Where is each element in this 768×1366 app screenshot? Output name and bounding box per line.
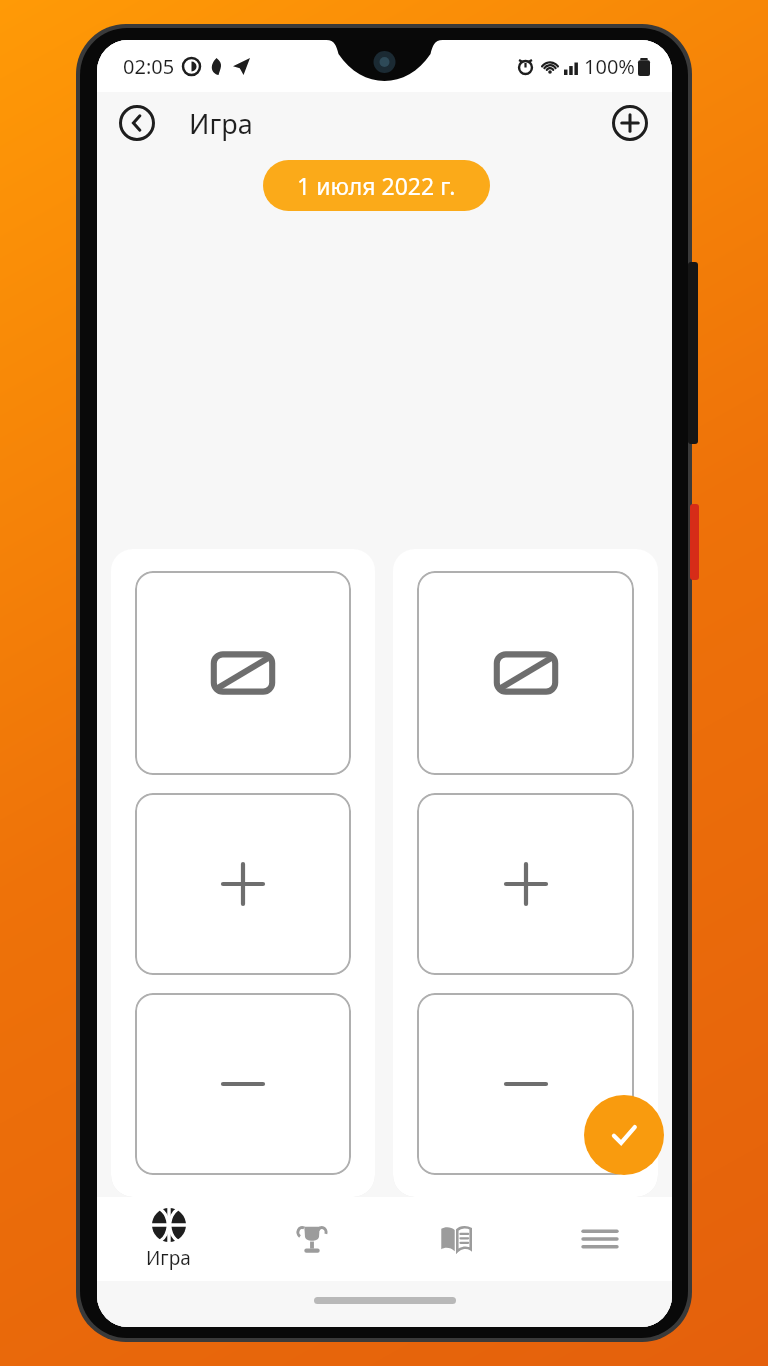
- button[interactable]: Добавить: [606, 99, 654, 147]
- staticText: 02:05: [123, 53, 175, 80]
- button[interactable]: Убавить: [135, 993, 351, 1175]
- button[interactable]: Меню: [528, 1197, 672, 1281]
- button[interactable]: Правила: [384, 1197, 528, 1281]
- button[interactable]: 1 июля 2022 г.: [263, 160, 490, 211]
- button[interactable]: Фото игрока: [417, 571, 634, 775]
- staticText: 100%: [584, 53, 635, 80]
- button[interactable]: Назад: [113, 99, 161, 147]
- staticText: Игра: [146, 1245, 191, 1271]
- staticText: 1 июля 2022 г.: [297, 170, 456, 201]
- button[interactable]: Подтвердить: [584, 1095, 664, 1175]
- button[interactable]: Убавить: [417, 993, 634, 1175]
- button[interactable]: Награды: [240, 1197, 384, 1281]
- button[interactable]: Прибавить: [417, 793, 634, 975]
- staticText: Игра: [189, 105, 253, 142]
- button[interactable]: Прибавить: [135, 793, 351, 975]
- button[interactable]: Фото игрока: [135, 571, 351, 775]
- button[interactable]: Игра: [97, 1197, 240, 1281]
